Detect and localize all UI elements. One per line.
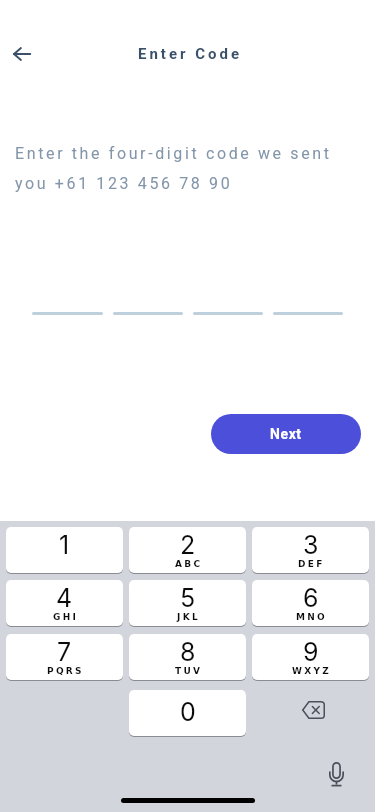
button[interactable]: Backspace [252,690,369,736]
staticText: Enter Code [89,45,291,63]
staticText: MNO [296,612,328,622]
button[interactable]: 7 [6,634,123,680]
button[interactable]: 1 [6,527,123,573]
button[interactable] [273,312,343,315]
staticText: WXYZ [292,666,332,676]
button[interactable] [32,312,103,315]
button[interactable]: 0 [129,690,246,736]
staticText: TUV [175,666,203,676]
staticText: JKL [177,612,200,622]
staticText: 7 [57,637,72,667]
staticText: 4 [56,583,73,613]
staticText: 2 [180,530,196,560]
staticText: 0 [180,697,196,727]
staticText: 1 [59,530,70,560]
button[interactable]: 2 [129,527,246,573]
staticText: GHI [53,612,79,622]
staticText: Enter the four-digit code we sent you +6… [15,144,332,193]
button[interactable]: 5 [129,580,246,626]
button[interactable] [113,312,183,315]
staticText: 3 [303,530,319,560]
staticText: 9 [303,637,319,667]
staticText: Next [270,426,302,442]
staticText: DEF [298,559,325,569]
button[interactable]: 9 [252,634,369,680]
button[interactable] [193,312,263,315]
button[interactable]: Next [211,414,361,454]
button[interactable]: 4 [6,580,123,626]
button[interactable]: Voice input [329,762,344,787]
staticText: ABC [175,559,203,569]
button[interactable]: 8 [129,634,246,680]
staticText: PQRS [47,666,84,676]
staticText: 5 [180,583,196,613]
button[interactable]: 6 [252,580,369,626]
button[interactable]: Back [3,35,41,73]
button[interactable]: 3 [252,527,369,573]
staticText: 6 [303,583,319,613]
staticText: 8 [180,637,196,667]
